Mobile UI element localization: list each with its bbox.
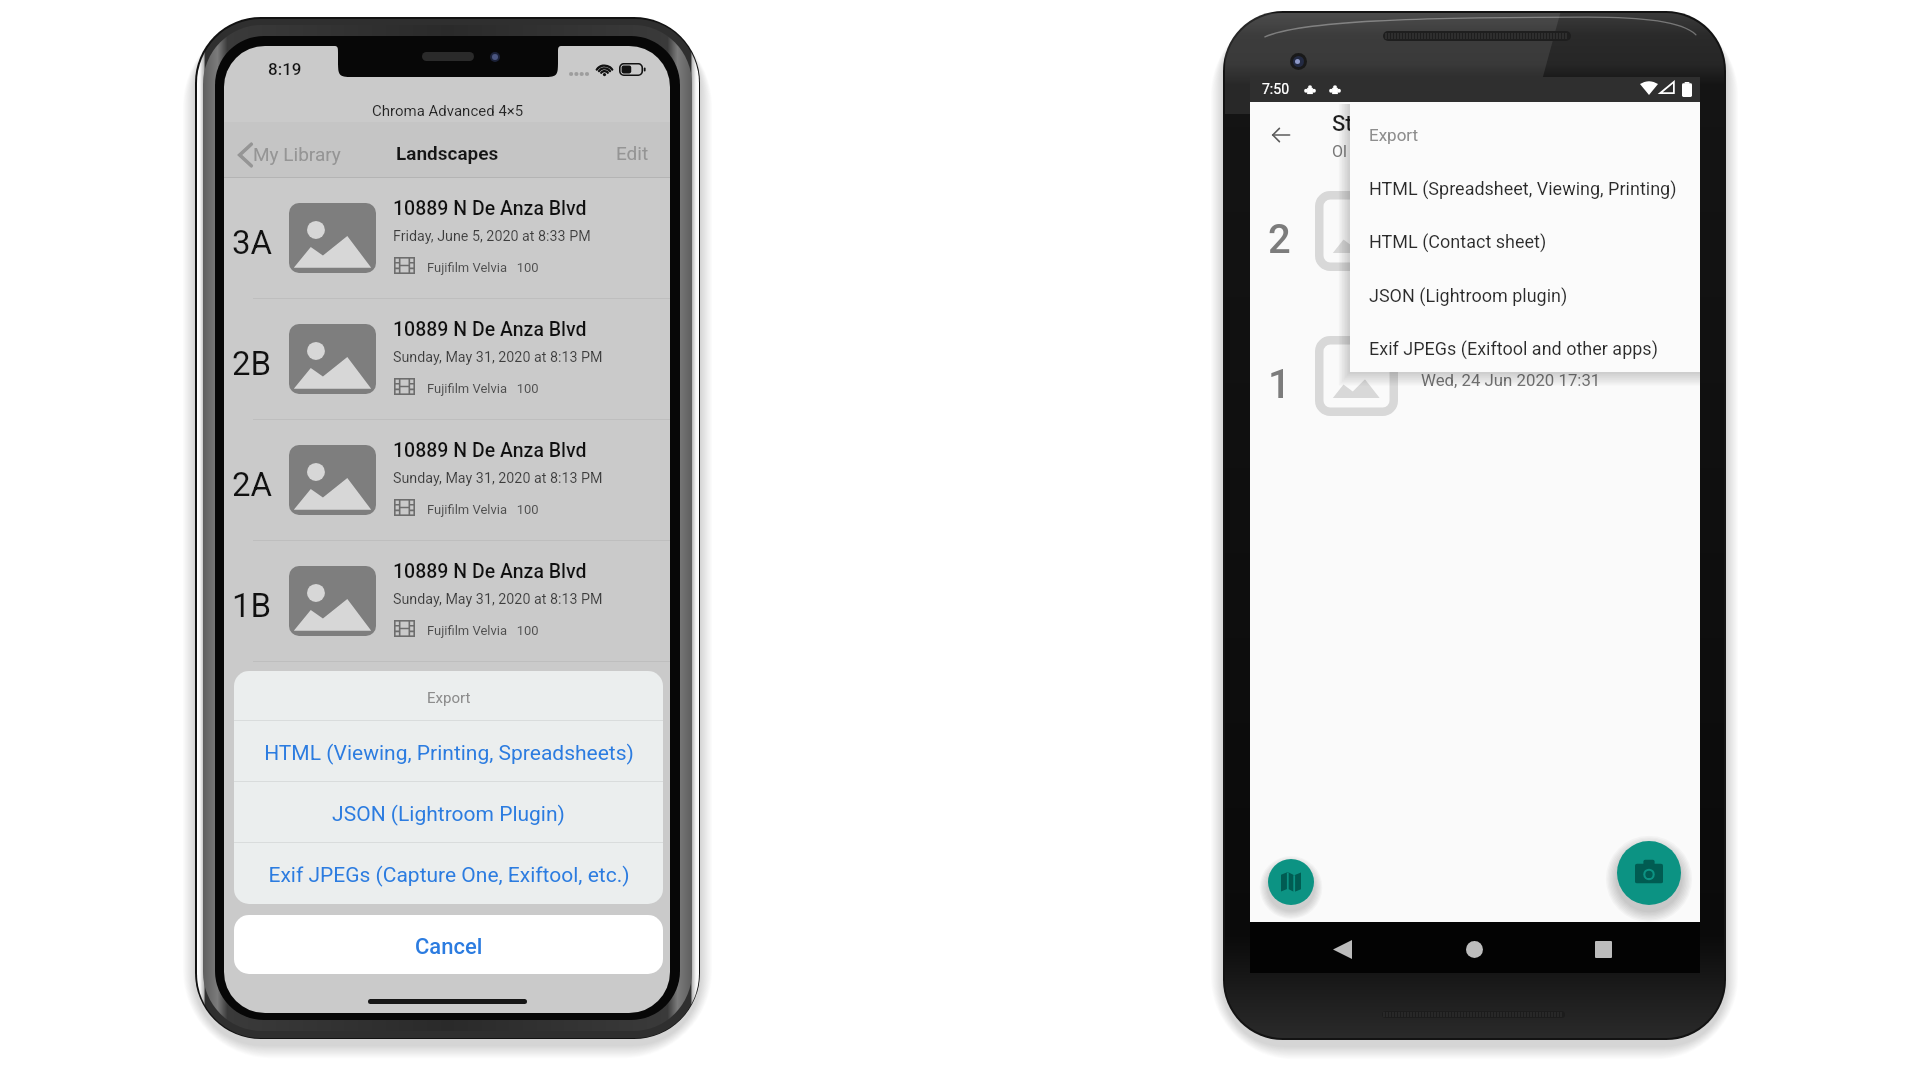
staticText: Cancel [415, 934, 483, 960]
button[interactable]: Cancel [234, 915, 663, 974]
staticText: JSON (Lightroom Plugin) [332, 802, 565, 827]
button[interactable]: HTML (Contact sheet) [1350, 215, 1700, 267]
button[interactable]: JSON (Lightroom Plugin) [234, 782, 663, 843]
staticText: Landscapes [396, 142, 499, 164]
staticText: Wed, 24 Jun 2020 17:31 [1421, 370, 1601, 390]
button[interactable]: 3A [224, 178, 670, 298]
staticText: Friday, June 5, 2020 at 8:33 PM [393, 228, 591, 245]
button[interactable]: My Library [236, 141, 343, 169]
staticText: 10889 N De Anza Blvd [393, 197, 587, 220]
staticText: Fujifilm Velvia 100 [427, 623, 539, 638]
staticText: 8:19 [268, 59, 302, 79]
staticText: 7:50 [1262, 81, 1289, 97]
button[interactable]: Recents [1595, 941, 1612, 958]
staticText: 10889 N De Anza Blvd [393, 439, 587, 462]
staticText: JSON (Lightroom plugin) [1369, 285, 1568, 306]
staticText: Sunday, May 31, 2020 at 8:13 PM [393, 470, 603, 487]
button[interactable]: 1 [1250, 331, 1700, 428]
staticText: Sunday, May 31, 2020 at 8:13 PM [393, 591, 603, 608]
button[interactable]: Back [1271, 125, 1291, 145]
staticText: HTML (Spreadsheet, Viewing, Printing) [1369, 178, 1677, 199]
button[interactable]: Exif JPEGs (Exiftool and other apps) [1350, 322, 1700, 374]
staticText: My Library [253, 143, 341, 165]
staticText: Export [427, 689, 471, 707]
button[interactable]: HTML (Spreadsheet, Viewing, Printing) [1350, 162, 1700, 214]
button[interactable]: Home [1466, 941, 1483, 958]
button[interactable]: Back [1333, 940, 1352, 959]
staticText: Ol [1332, 142, 1347, 161]
staticText: Fujifilm Velvia 100 [427, 502, 539, 517]
staticText: Export [1369, 125, 1419, 145]
staticText: 2 [1268, 216, 1291, 263]
button[interactable]: 2 [1250, 186, 1700, 283]
staticText: 2B [232, 344, 272, 383]
staticText: Exif JPEGs (Exiftool and other apps) [1369, 338, 1658, 359]
staticText: 10889 N De Anza Blvd [393, 560, 587, 583]
button[interactable]: HTML (Viewing, Printing, Spreadsheets) [234, 721, 663, 782]
staticText: Exif JPEGs (Capture One, Exiftool, etc.) [268, 863, 630, 888]
staticText: Chroma Advanced 4×5 [372, 102, 524, 120]
button[interactable]: Exif JPEGs (Capture One, Exiftool, etc.) [234, 843, 663, 904]
staticText: 10889 N De Anza Blvd [393, 318, 587, 341]
staticText: HTML (Viewing, Printing, Spreadsheets) [264, 741, 634, 766]
staticText: Fujifilm Velvia 100 [427, 260, 539, 275]
staticText: 1 [1268, 361, 1291, 408]
staticText: Sunday, May 31, 2020 at 8:13 PM [393, 349, 603, 366]
staticText: 2A [232, 465, 273, 504]
button[interactable]: 1B [224, 541, 670, 661]
button[interactable]: 2A [224, 420, 670, 540]
staticText: St [1332, 111, 1353, 137]
staticText: 3A [232, 223, 273, 262]
button[interactable]: JSON (Lightroom plugin) [1350, 269, 1700, 321]
button[interactable]: 2B [224, 299, 670, 419]
staticText: HTML (Contact sheet) [1369, 231, 1547, 252]
staticText: Fujifilm Velvia 100 [427, 381, 539, 396]
button[interactable]: Map [1268, 859, 1314, 905]
button[interactable]: Camera [1617, 841, 1681, 905]
button[interactable]: Edit [614, 140, 651, 166]
staticText: 1B [232, 586, 272, 625]
